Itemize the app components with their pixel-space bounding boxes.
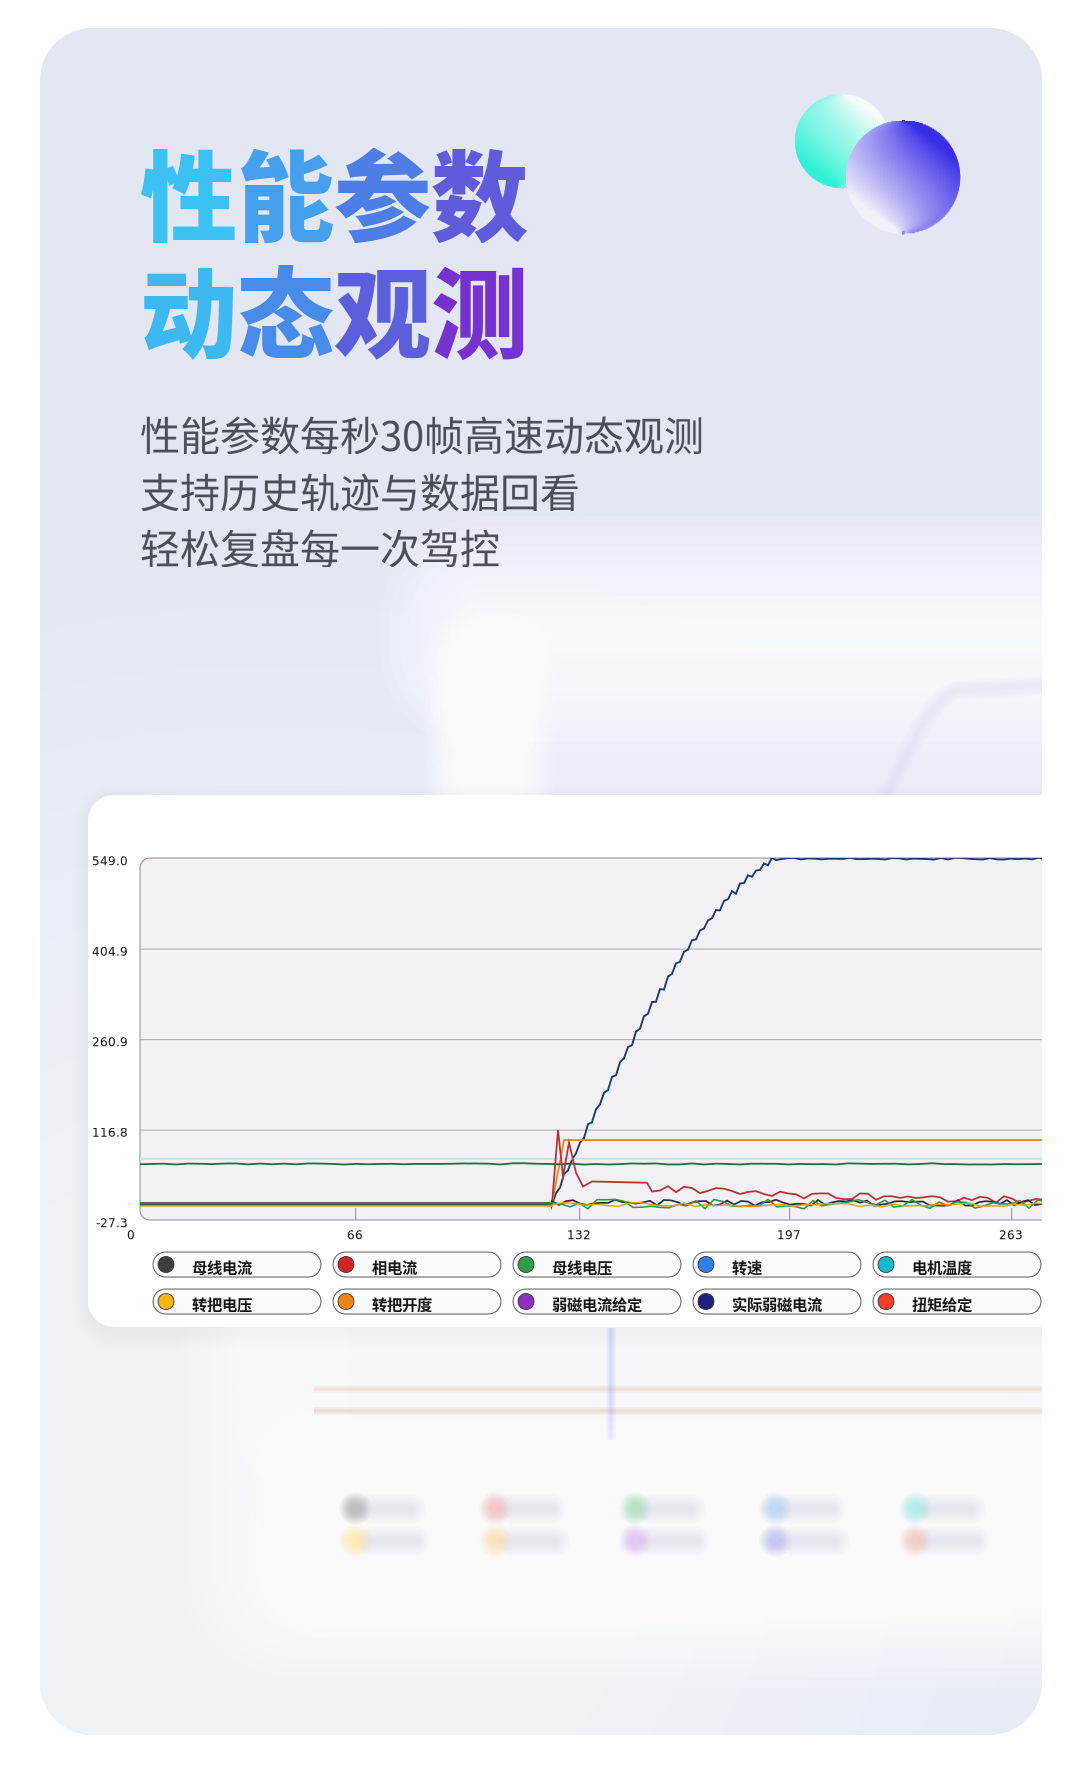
staticText: 转把电压 — [192, 1292, 252, 1315]
button[interactable]: 电机温度 — [873, 1252, 1041, 1277]
staticText: 116.8 — [92, 1125, 128, 1139]
staticText: 132 — [567, 1228, 591, 1242]
staticText: 实际弱磁电流 — [732, 1292, 822, 1315]
staticText: 母线电压 — [552, 1255, 612, 1278]
staticText: 性 — [140, 120, 237, 261]
button[interactable]: 实际弱磁电流 — [693, 1289, 861, 1314]
staticText: 相电流 — [372, 1255, 417, 1278]
staticText: 能 — [237, 120, 334, 261]
staticText: 轻松复盘每一次驾控 — [140, 517, 500, 575]
button[interactable]: 母线电流 — [153, 1252, 321, 1277]
button[interactable]: 扭矩给定 — [873, 1289, 1041, 1314]
staticText: 0 — [127, 1228, 135, 1242]
staticText: 66 — [347, 1228, 363, 1242]
button[interactable]: 弱磁电流给定 — [513, 1289, 681, 1314]
staticText: 549.0 — [92, 854, 128, 868]
staticText: 数 — [431, 120, 528, 261]
staticText: 263 — [999, 1228, 1023, 1242]
staticText: 260.9 — [92, 1035, 128, 1049]
staticText: 支持历史轨迹与数据回看 — [140, 461, 580, 519]
staticText: 扭矩给定 — [912, 1292, 972, 1315]
staticText: 404.9 — [92, 944, 128, 958]
button[interactable]: 转把开度 — [333, 1289, 501, 1314]
button[interactable]: 相电流 — [333, 1252, 501, 1277]
staticText: 参 — [334, 120, 431, 261]
staticText: 转把开度 — [372, 1292, 432, 1315]
button[interactable]: 母线电压 — [513, 1252, 681, 1277]
button[interactable]: 转把电压 — [153, 1289, 321, 1314]
staticText: 观 — [334, 237, 431, 378]
staticText: 转速 — [732, 1255, 762, 1278]
staticText: 态 — [237, 237, 334, 378]
staticText: 性能参数每秒30帧高速动态观测 — [140, 404, 704, 462]
staticText: 测 — [431, 237, 528, 378]
button[interactable]: 转速 — [693, 1252, 861, 1277]
staticText: 母线电流 — [192, 1255, 252, 1278]
staticText: 电机温度 — [912, 1255, 972, 1278]
staticText: -27.3 — [96, 1216, 128, 1230]
staticText: 197 — [777, 1228, 801, 1242]
staticText: 动 — [140, 237, 237, 378]
staticText: 弱磁电流给定 — [552, 1292, 642, 1315]
